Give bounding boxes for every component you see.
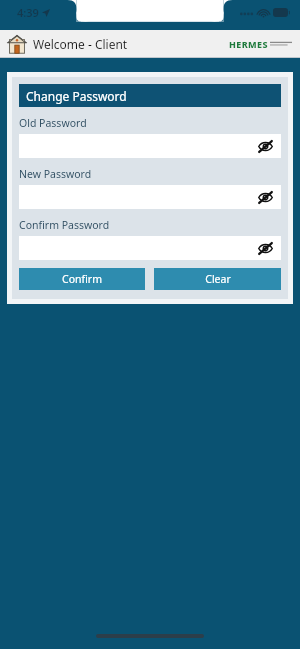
- button[interactable]: Change Password: [19, 84, 281, 107]
- button[interactable]: Show password: [19, 185, 281, 209]
- button[interactable]: Show password: [19, 236, 281, 260]
- button[interactable]: Home: [6, 33, 28, 55]
- staticText: Confirm Password: [19, 218, 110, 232]
- button[interactable]: Show password: [258, 242, 273, 255]
- button[interactable]: Show password: [258, 140, 273, 153]
- button[interactable]: Confirm: [19, 268, 145, 290]
- staticText: HERMES: [229, 38, 268, 50]
- staticText: Clear: [205, 272, 231, 286]
- staticText: Change Password: [26, 88, 127, 104]
- button[interactable]: Clear: [154, 268, 281, 290]
- staticText: 4:39: [17, 5, 39, 20]
- staticText: Welcome - Client: [33, 36, 128, 52]
- button[interactable]: Show password: [19, 134, 281, 158]
- button[interactable]: Show password: [258, 191, 273, 204]
- staticText: Confirm: [62, 272, 102, 286]
- staticText: New Password: [19, 167, 92, 181]
- staticText: Old Password: [19, 116, 87, 130]
